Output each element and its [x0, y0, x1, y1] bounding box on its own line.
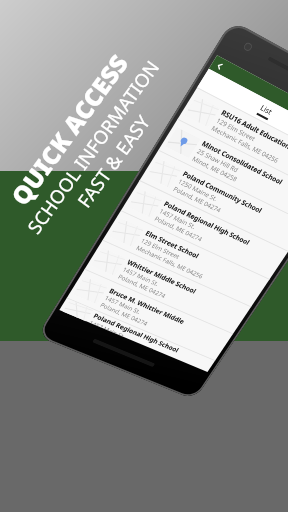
- other: Back: [214, 61, 225, 71]
- staticText: Poland, ME 04274: [153, 214, 204, 243]
- staticText: 1457 Main St.: [121, 265, 161, 288]
- button[interactable]: Whittier Middle School: [85, 240, 251, 333]
- button[interactable]: RSU16 Adult Education: [178, 88, 288, 194]
- button[interactable]: Poland Regional High School: [59, 298, 215, 372]
- staticText: SCHOOL INFORMATION: [21, 55, 164, 239]
- staticText: Whittier Middle School: [125, 257, 199, 296]
- staticText: Elm Street School: [144, 228, 201, 260]
- button[interactable]: Minot Consolidated School: [159, 119, 288, 223]
- staticText: List: [258, 102, 275, 117]
- staticText: 25 Shaw Hill Rd: [195, 147, 240, 174]
- button[interactable]: Bruce M. Whittier Middle: [67, 270, 233, 360]
- staticText: Minot Consolidated School: [200, 138, 285, 186]
- staticText: 129 Elm Street: [139, 236, 181, 261]
- button[interactable]: Poland Regional High School: [121, 181, 288, 279]
- staticText: QUICK ACCESS: [3, 48, 135, 212]
- staticText: Poland, ME 04274: [172, 185, 223, 214]
- staticText: RSU16 Adult Education: [219, 107, 288, 151]
- staticText: 1457 Main St.: [103, 294, 143, 316]
- staticText: Mechanic Falls, ME 04256: [135, 244, 205, 280]
- staticText: 1457 Main St.: [158, 207, 198, 231]
- staticText: Bruce M. Whittier Middle: [107, 286, 187, 326]
- staticText: Poland Regional High School: [162, 199, 252, 247]
- staticText: Poland, ME 04274: [116, 272, 168, 300]
- staticText: Minot, ME 04258: [190, 154, 239, 183]
- staticText: 129 Elm Street: [215, 116, 257, 143]
- staticText: Poland Community School: [181, 169, 264, 215]
- button[interactable]: List: [230, 86, 288, 135]
- staticText: 1250 Maine St.: [176, 177, 220, 203]
- staticText: Poland, ME 04274: [99, 301, 150, 328]
- staticText: 1457 Main St.: [89, 319, 127, 337]
- staticText: Poland Regional High School: [92, 311, 181, 354]
- staticText: FAST & EASY: [71, 110, 153, 210]
- button[interactable]: Elm Street School: [103, 211, 269, 306]
- button[interactable]: Poland Community School: [140, 150, 288, 251]
- staticText: Mechanic Falls, ME 04256: [210, 124, 280, 165]
- button[interactable]: Back: [209, 55, 288, 148]
